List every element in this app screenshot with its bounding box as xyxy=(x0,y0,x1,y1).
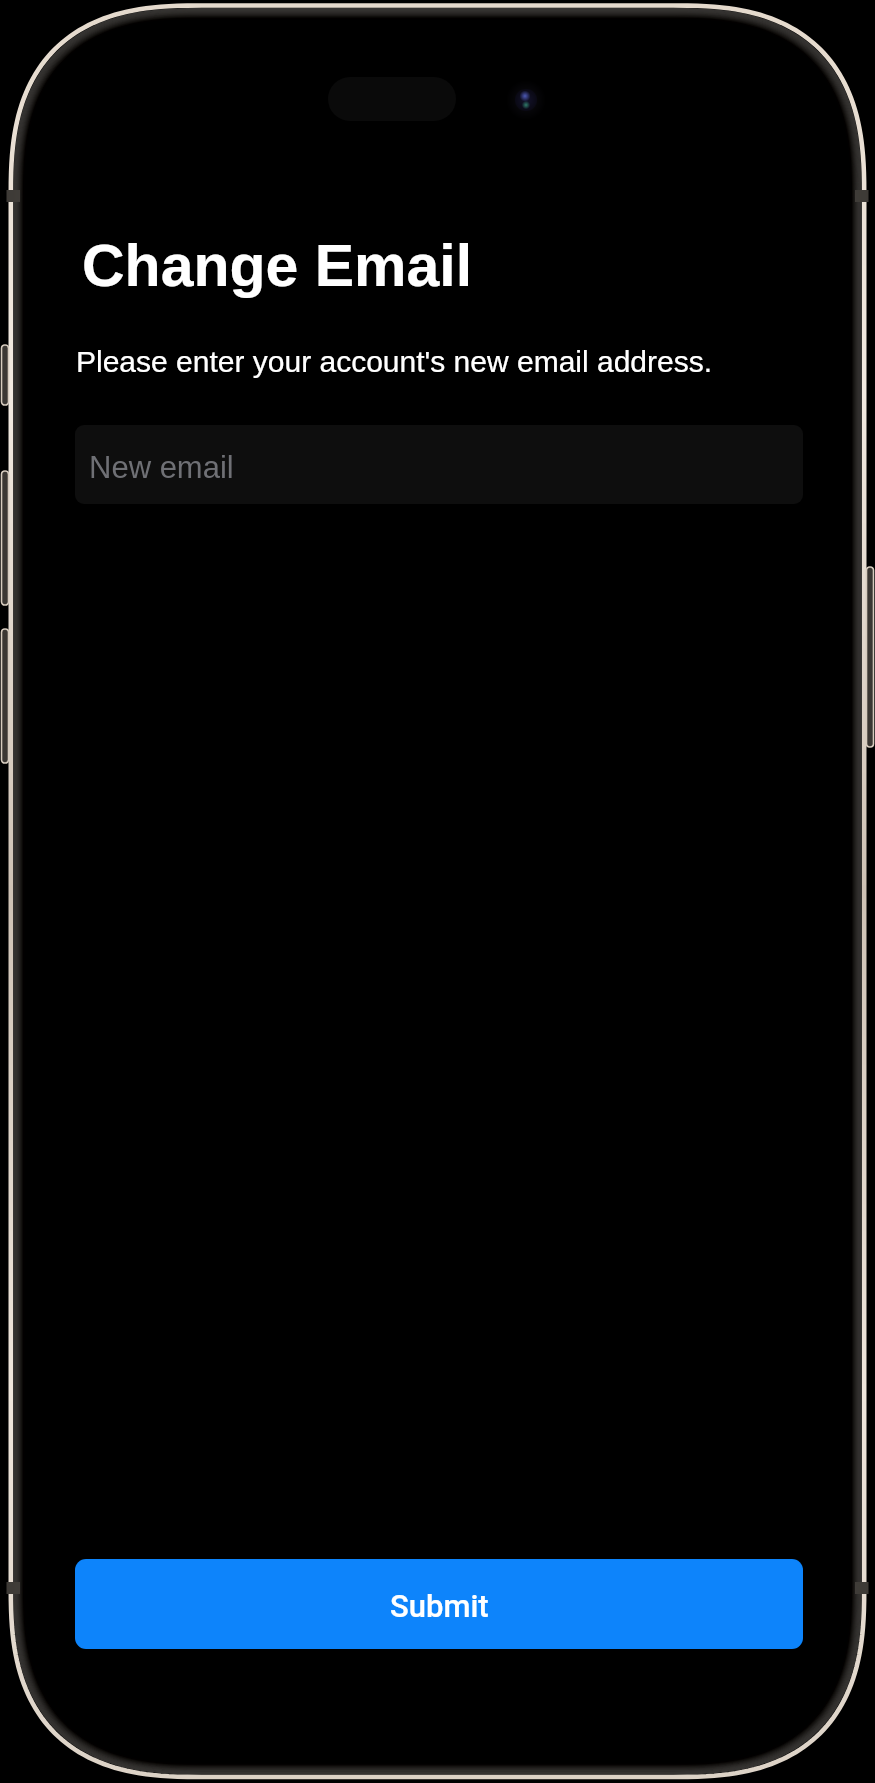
staticText: New email xyxy=(89,450,234,485)
button[interactable]: Submit xyxy=(75,1559,803,1649)
button[interactable]: New email text field xyxy=(75,425,803,504)
staticText: Please enter your account's new email ad… xyxy=(76,345,713,379)
staticText: Submit xyxy=(390,1588,489,1624)
staticText: Change Email xyxy=(82,233,473,299)
